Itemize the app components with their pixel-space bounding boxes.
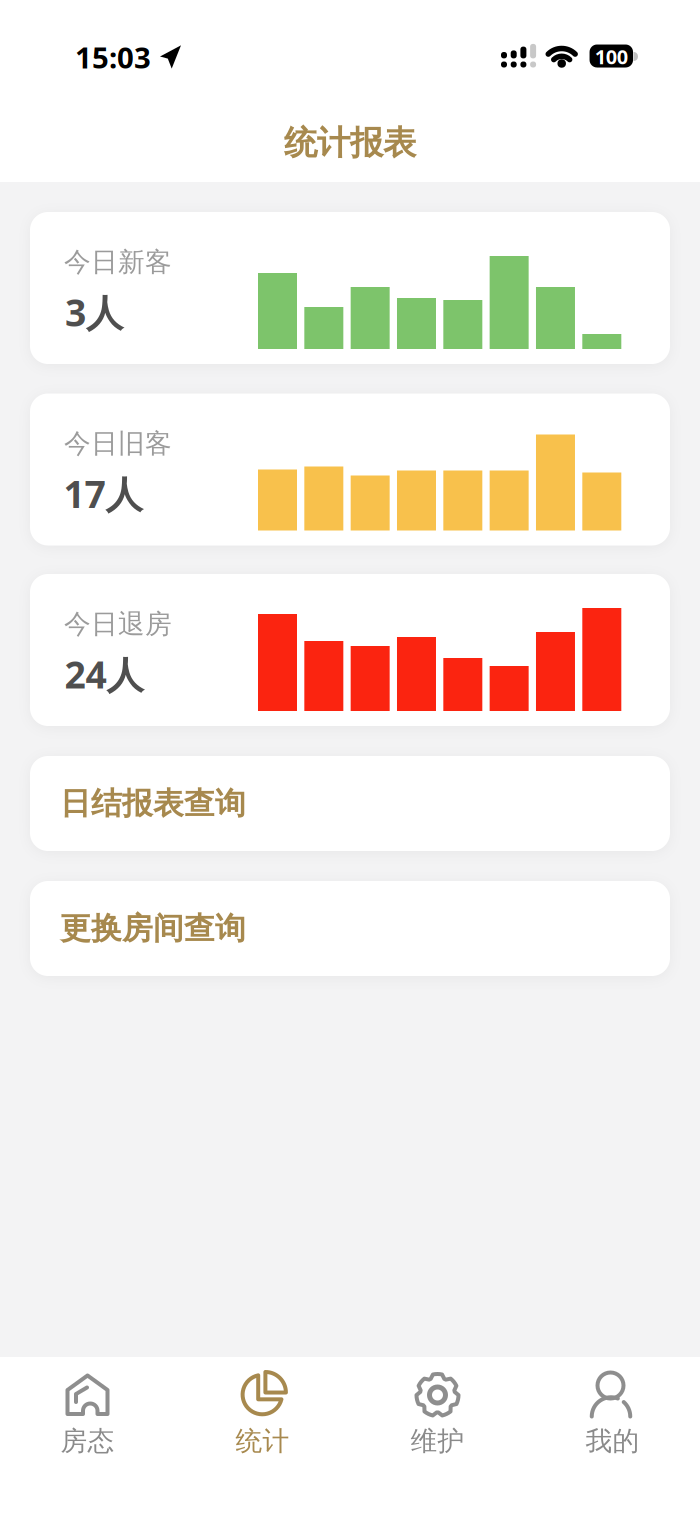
button[interactable]: 我的 [525,1357,700,1515]
staticText: 15:03 [75,37,151,76]
button[interactable]: 日结报表查询 [30,756,670,851]
button[interactable]: 今日旧客 [30,393,670,545]
staticText: 房态 [60,1425,114,1457]
staticText: 我的 [585,1425,639,1457]
staticText: 统计 [235,1425,289,1457]
button[interactable]: 房态 [0,1357,175,1515]
button[interactable]: 维护 [350,1357,525,1515]
staticText: 今日新客 [64,246,172,278]
staticText: 统计报表 [284,122,416,163]
staticText: 24人 [64,649,143,699]
staticText: 更换房间查询 [60,910,246,947]
staticText: 今日退房 [64,608,172,640]
staticText: 日结报表查询 [60,785,246,822]
button[interactable]: 统计 [175,1357,350,1515]
button[interactable]: 今日新客 [30,212,670,364]
button[interactable]: 更换房间查询 [30,881,670,976]
staticText: 100 [595,43,628,70]
staticText: 3人 [65,287,123,337]
button[interactable]: 今日退房 [30,574,670,726]
staticText: 维护 [410,1425,464,1457]
staticText: 今日旧客 [64,427,172,460]
staticText: 17人 [63,469,142,518]
